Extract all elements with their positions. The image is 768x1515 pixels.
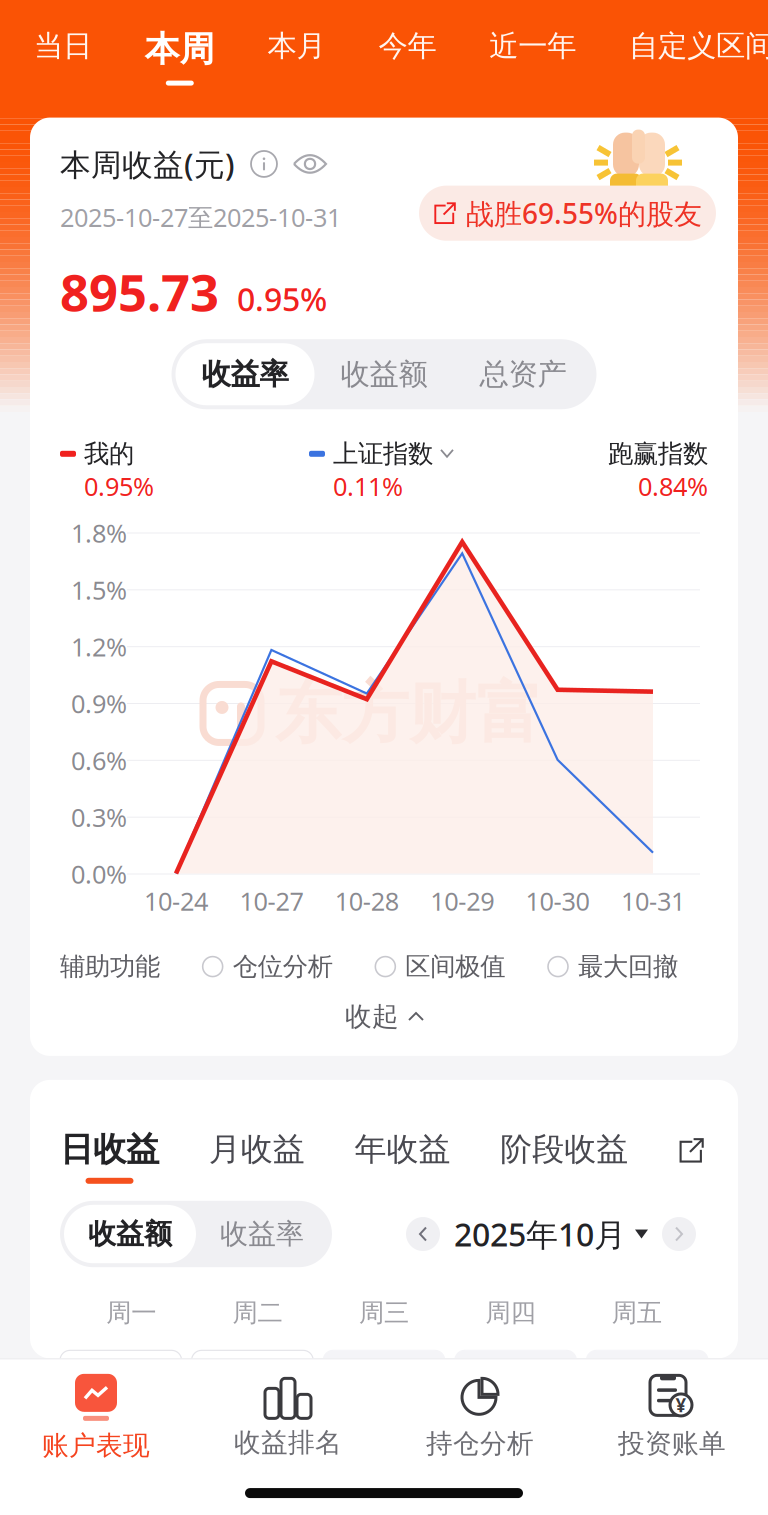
button[interactable]: 本月 bbox=[268, 28, 326, 79]
staticText: 收益排名 bbox=[234, 1426, 342, 1459]
staticText: 跑赢指数 bbox=[608, 438, 708, 469]
button[interactable]: 说明 bbox=[251, 151, 277, 177]
staticText: 10-27 bbox=[239, 884, 303, 918]
staticText: 今年 bbox=[378, 28, 436, 64]
staticText: 0.95% bbox=[237, 278, 327, 320]
button[interactable]: 近一年 bbox=[489, 28, 576, 79]
staticText: 收益率 bbox=[220, 1217, 304, 1251]
staticText: 2025-10-27至2025-10-31 bbox=[60, 200, 341, 234]
button[interactable]: 仓位分析 bbox=[203, 951, 333, 982]
staticText: 我的 bbox=[84, 438, 134, 469]
button[interactable]: 收益率 bbox=[175, 343, 314, 405]
button[interactable]: 总资产 bbox=[453, 343, 592, 405]
staticText: 周三 bbox=[359, 1297, 409, 1328]
staticText: 0.0% bbox=[71, 857, 127, 891]
staticText: 区间极值 bbox=[405, 951, 505, 982]
button[interactable]: 本周 bbox=[145, 28, 215, 86]
button[interactable]: 收益排名 bbox=[192, 1376, 384, 1459]
staticText: ¥ bbox=[675, 1392, 686, 1417]
staticText: 0.95% bbox=[84, 469, 154, 503]
button[interactable]: 2025年10月 bbox=[454, 1213, 648, 1255]
staticText: 账户表现 bbox=[42, 1429, 150, 1462]
button[interactable]: ¥ bbox=[576, 1375, 768, 1460]
button[interactable]: 阶段收益 bbox=[500, 1130, 628, 1183]
button[interactable]: 账户表现 bbox=[0, 1373, 192, 1462]
staticText: 周五 bbox=[612, 1297, 662, 1328]
staticText: 本周收益(元) bbox=[60, 144, 235, 184]
button[interactable]: 上一月 bbox=[406, 1217, 440, 1251]
button[interactable]: 区间极值 bbox=[375, 951, 505, 982]
staticText: 1.8% bbox=[71, 516, 127, 550]
button[interactable]: 下一月 bbox=[662, 1217, 696, 1251]
staticText: 本月 bbox=[268, 28, 326, 64]
staticText: 收起 bbox=[345, 1000, 399, 1033]
staticText: 10-29 bbox=[430, 884, 494, 918]
staticText: 0.6% bbox=[71, 743, 127, 777]
staticText: 本周 bbox=[145, 28, 215, 71]
staticText: 辅助功能 bbox=[60, 951, 160, 982]
staticText: 当日 bbox=[34, 28, 92, 64]
staticText: 10-28 bbox=[335, 884, 399, 918]
button[interactable]: 最大回撤 bbox=[548, 951, 678, 982]
button[interactable]: 今年 bbox=[378, 28, 436, 79]
staticText: 0.3% bbox=[71, 800, 127, 834]
button[interactable]: 收益率 bbox=[196, 1205, 328, 1263]
staticText: 总资产 bbox=[479, 356, 566, 392]
staticText: 10-31 bbox=[621, 884, 685, 918]
staticText: 周四 bbox=[485, 1297, 535, 1328]
staticText: 周一 bbox=[106, 1297, 156, 1328]
button[interactable]: 隐藏金额 bbox=[293, 154, 327, 174]
staticText: 年收益 bbox=[354, 1130, 450, 1169]
button[interactable]: 分享 bbox=[678, 1137, 704, 1175]
staticText: 持仓分析 bbox=[426, 1427, 534, 1460]
staticText: 仓位分析 bbox=[233, 951, 333, 982]
staticText: 1.2% bbox=[71, 630, 127, 663]
button[interactable]: 收益额 bbox=[64, 1205, 196, 1263]
button[interactable]: 月收益 bbox=[209, 1130, 305, 1183]
staticText: 0.11% bbox=[333, 469, 403, 503]
staticText: 0.84% bbox=[638, 469, 708, 503]
staticText: 阶段收益 bbox=[500, 1130, 628, 1169]
button[interactable]: 年收益 bbox=[354, 1130, 450, 1183]
staticText: 战胜69.55%的股友 bbox=[466, 195, 702, 232]
staticText: 收益额 bbox=[88, 1217, 172, 1251]
staticText: 投资账单 bbox=[618, 1427, 726, 1460]
staticText: 东方财富 bbox=[275, 672, 543, 754]
button[interactable]: 当日 bbox=[34, 28, 92, 79]
staticText: 收益率 bbox=[201, 356, 288, 392]
staticText: 月收益 bbox=[209, 1130, 305, 1169]
staticText: 2025年10月 bbox=[454, 1213, 626, 1255]
staticText: 10-24 bbox=[144, 884, 208, 918]
staticText: 上证指数 bbox=[333, 438, 433, 469]
staticText: 895.73 bbox=[60, 258, 219, 325]
staticText: 最大回撤 bbox=[578, 951, 678, 982]
staticText: 收益额 bbox=[340, 356, 427, 392]
staticText: 10-30 bbox=[526, 884, 590, 918]
staticText: 自定义区间 bbox=[629, 28, 768, 64]
button[interactable]: 持仓分析 bbox=[384, 1375, 576, 1460]
staticText: 1.5% bbox=[71, 573, 127, 607]
staticText: 周二 bbox=[233, 1297, 283, 1328]
button[interactable]: 日收益 bbox=[60, 1129, 159, 1184]
button[interactable]: 战胜69.55%的股友 bbox=[419, 186, 716, 241]
staticText: 近一年 bbox=[489, 28, 576, 64]
staticText: 日收益 bbox=[60, 1129, 159, 1170]
button[interactable]: 收益额 bbox=[314, 343, 453, 405]
staticText: 0.9% bbox=[71, 687, 127, 720]
button[interactable]: 自定义区间 bbox=[629, 28, 768, 79]
button[interactable]: 收起 bbox=[60, 987, 708, 1046]
